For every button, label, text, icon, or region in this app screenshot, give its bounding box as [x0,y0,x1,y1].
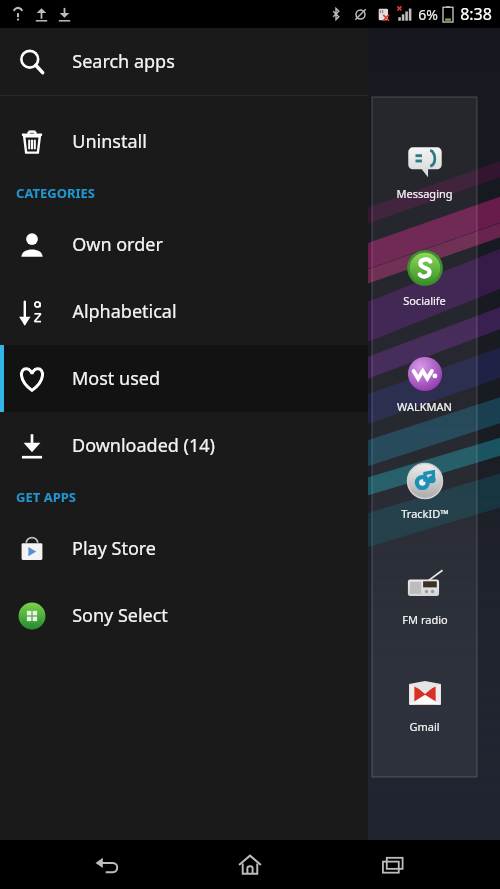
staticText: FM radio [402,612,448,627]
button[interactable]: Gmail [372,671,477,736]
button[interactable]: Socialife [372,245,477,310]
staticText: Sony Select [72,603,168,628]
staticText: Downloaded (14) [72,433,215,458]
staticText: GET APPS [16,488,76,506]
staticText: Most used [72,366,160,391]
staticText: Own order [72,232,163,257]
staticText: TrackID™ [401,506,449,521]
button[interactable]: Home [214,840,286,889]
button[interactable]: Recent apps [357,840,429,889]
button[interactable]: Play Store [0,515,368,582]
staticText: CATEGORIES [16,184,95,202]
staticText: Gmail [409,719,440,734]
button[interactable]: Search apps [0,28,368,95]
staticText: Uninstall [72,129,147,154]
button[interactable]: Messaging [372,138,477,203]
staticText: Messaging [396,186,453,201]
staticText: Play Store [72,536,156,561]
staticText: 8:38 [460,3,492,25]
button[interactable]: Own order [0,211,368,278]
button[interactable]: Back [71,840,143,889]
staticText: Alphabetical [72,299,177,324]
button[interactable]: Most used [0,345,368,412]
button[interactable]: WALKMAN [372,351,477,416]
button[interactable]: TrackID™ [372,458,477,523]
staticText: Socialife [403,293,446,308]
staticText: WALKMAN [397,399,452,414]
button[interactable]: Alphabetical [0,278,368,345]
staticText: 6% [418,5,438,24]
button[interactable]: Uninstall [0,108,368,175]
button[interactable]: Downloaded (14) [0,412,368,479]
button[interactable]: Sony Select [0,582,368,649]
button[interactable]: FM radio [372,564,477,629]
staticText: Search apps [72,49,175,74]
